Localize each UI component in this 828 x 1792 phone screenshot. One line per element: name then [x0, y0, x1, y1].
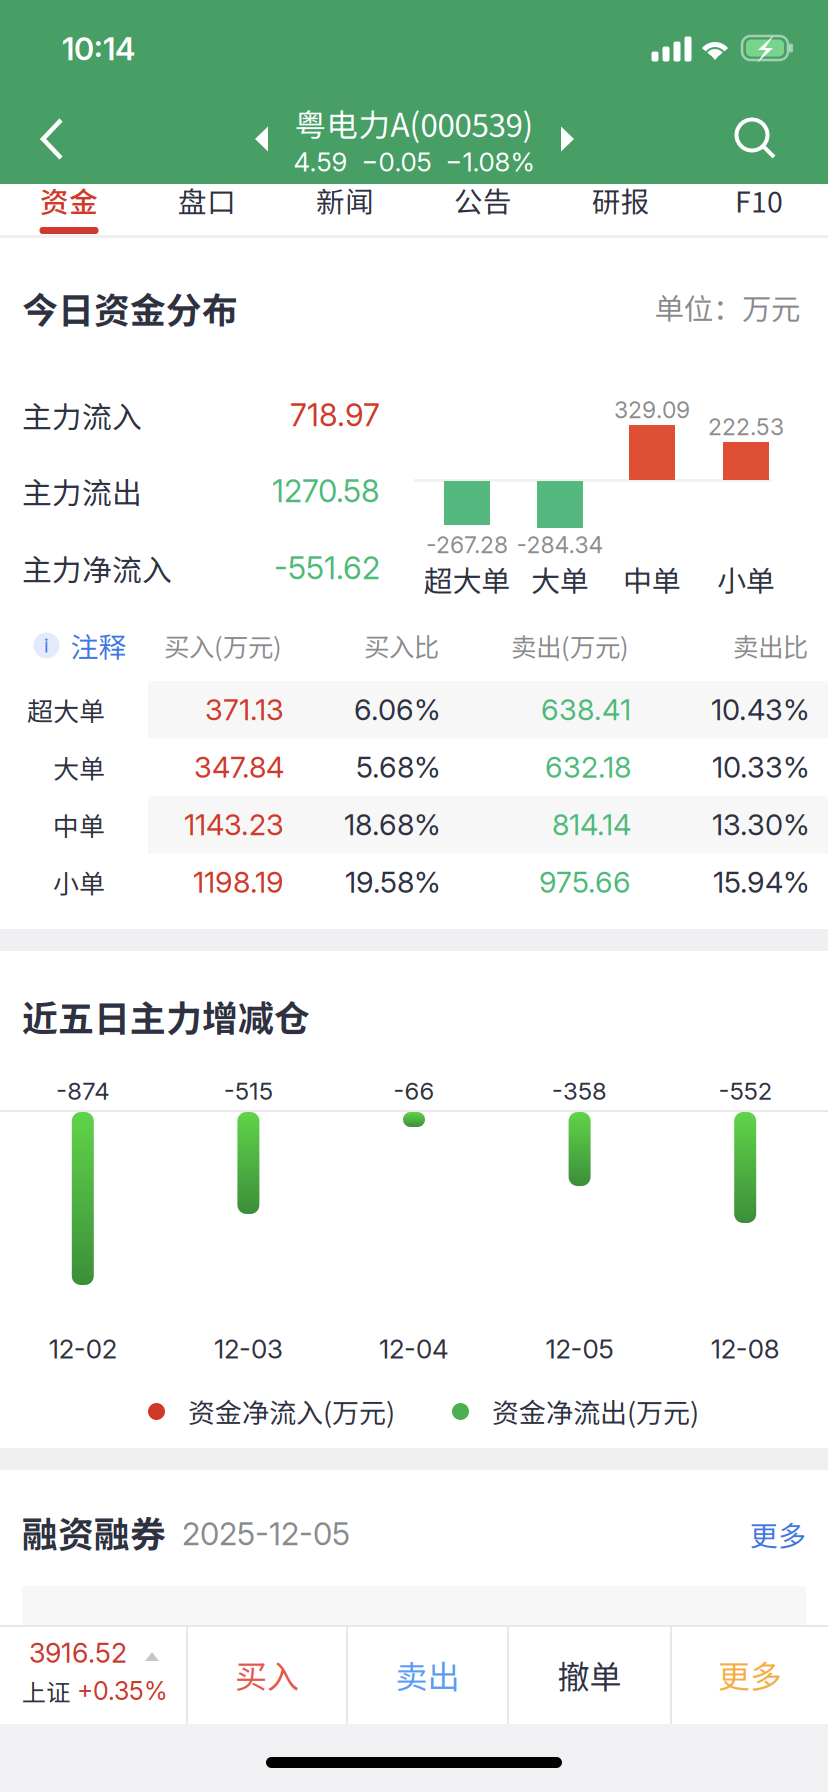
staticText: 资金	[40, 179, 98, 221]
staticText: 买入	[235, 1651, 299, 1698]
staticText: 单位：万元	[655, 286, 800, 328]
button[interactable]: F10	[690, 184, 828, 235]
staticText: 中单	[53, 806, 105, 843]
button[interactable]: 研报	[552, 184, 690, 235]
staticText: 主力流入	[22, 393, 142, 436]
staticText: 主力流出	[22, 469, 142, 512]
staticText: 公告	[454, 179, 512, 221]
button[interactable]: 下一只股票	[546, 94, 590, 184]
staticText: 卖出	[395, 1651, 459, 1698]
staticText: 今日资金分布	[22, 282, 238, 334]
button[interactable]: 卖出	[348, 1625, 507, 1724]
staticText: 13.30%	[712, 807, 810, 842]
staticText: -284.34	[516, 531, 603, 559]
button[interactable]: 搜索	[704, 94, 808, 184]
staticText: -515	[224, 1076, 273, 1105]
staticText: 上证	[22, 1674, 70, 1708]
staticText: 975.66	[539, 865, 631, 900]
button[interactable]: i	[16, 610, 144, 681]
staticText: 大单	[531, 558, 589, 600]
staticText: 卖出(万元)	[511, 627, 629, 664]
staticText: 买入(万元)	[164, 627, 282, 664]
staticText: -358	[552, 1076, 607, 1105]
button[interactable]: 上证指数 3916.52	[0, 1625, 186, 1724]
staticText: 2025-12-05	[182, 1515, 350, 1553]
staticText: 12-03	[214, 1333, 283, 1365]
staticText: 1143.23	[184, 807, 284, 842]
button[interactable]: 上一只股票	[240, 94, 284, 184]
staticText: 12-08	[711, 1333, 780, 1365]
staticText: 中单	[623, 558, 681, 600]
staticText: 10.33%	[712, 750, 810, 785]
staticText: 3916.52	[29, 1637, 127, 1669]
staticText: 资金净流出(万元)	[492, 1391, 699, 1431]
staticText: 12-02	[49, 1333, 117, 1365]
staticText: 小单	[53, 863, 105, 901]
staticText: 638.41	[541, 692, 631, 727]
staticText: 盘口	[178, 179, 236, 221]
staticText: 注释	[70, 625, 126, 666]
staticText: 近五日主力增减仓	[22, 990, 310, 1042]
staticText: 卖出比	[733, 627, 808, 664]
staticText: 12-05	[546, 1333, 614, 1365]
staticText: 10:14	[62, 30, 135, 68]
staticText: -874	[56, 1076, 109, 1105]
staticText: 撤单	[557, 1651, 621, 1698]
button[interactable]: 更多	[686, 1508, 806, 1560]
staticText: 18.68%	[344, 807, 441, 842]
staticText: -66	[393, 1076, 434, 1105]
staticText: 814.14	[552, 807, 631, 842]
staticText: 6.06%	[354, 692, 441, 727]
staticText: 新闻	[316, 179, 374, 221]
staticText: -551.62	[274, 549, 380, 587]
staticText: 更多	[718, 1651, 782, 1698]
staticText: 超大单	[27, 691, 105, 728]
staticText: 融资融券	[22, 1506, 166, 1558]
staticText: 资金净流入(万元)	[188, 1391, 395, 1431]
staticText: 粤电力A(000539)	[294, 100, 533, 146]
button[interactable]: 资金	[0, 184, 138, 235]
staticText: 718.97	[290, 396, 380, 434]
staticText: 1198.19	[193, 865, 284, 900]
staticText: 1270.58	[272, 472, 380, 510]
staticText: 632.18	[545, 750, 631, 785]
staticText: 15.94%	[713, 865, 810, 900]
staticText: 超大单	[423, 558, 510, 600]
staticText: 大单	[53, 748, 105, 786]
staticText: 19.58%	[345, 865, 441, 900]
staticText: 12-04	[379, 1333, 449, 1365]
staticText: -267.28	[426, 531, 508, 559]
staticText: 329.09	[614, 396, 690, 424]
staticText: -552	[719, 1076, 772, 1105]
staticText: +0.35%	[77, 1676, 168, 1706]
staticText: i	[44, 634, 49, 657]
staticText: F10	[735, 179, 783, 221]
staticText: 10.43%	[711, 692, 810, 727]
button[interactable]: 撤单	[509, 1625, 670, 1724]
staticText: 347.84	[194, 750, 284, 785]
button[interactable]: 新闻	[276, 184, 414, 235]
button[interactable]: 更多	[672, 1625, 828, 1724]
staticText: 主力净流入	[22, 546, 172, 589]
button[interactable]: 盘口	[138, 184, 276, 235]
staticText: 研报	[592, 179, 650, 221]
staticText: 小单	[717, 558, 775, 600]
button[interactable]: 返回	[0, 94, 104, 184]
staticText: 371.13	[205, 692, 284, 727]
staticText: 5.68%	[356, 750, 441, 785]
staticText: 222.53	[708, 413, 784, 441]
button[interactable]: 买入	[188, 1625, 346, 1724]
staticText: 买入比	[364, 627, 439, 664]
staticText: 更多	[750, 1514, 806, 1554]
staticText: 4.59 −0.05 −1.08%	[293, 146, 534, 178]
button[interactable]: 公告	[414, 184, 552, 235]
